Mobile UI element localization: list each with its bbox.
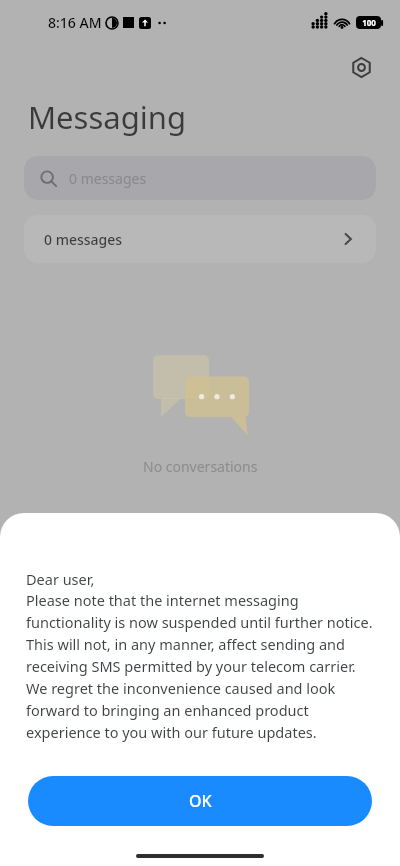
staticText: No conversations — [143, 457, 258, 476]
staticText: 0 messages — [44, 230, 123, 249]
staticText: Messaging — [28, 96, 186, 138]
button[interactable]: 0 messages — [24, 215, 376, 263]
button[interactable]: OK — [28, 776, 372, 826]
button[interactable]: 0 messages — [24, 156, 376, 200]
staticText: 100 — [362, 17, 376, 28]
staticText: 0 messages — [69, 169, 147, 188]
button[interactable]: Settings — [344, 50, 378, 84]
staticText: Dear user, Please note that the internet… — [26, 569, 374, 743]
staticText: 8:16 AM — [48, 13, 102, 32]
staticText: OK — [189, 790, 212, 812]
